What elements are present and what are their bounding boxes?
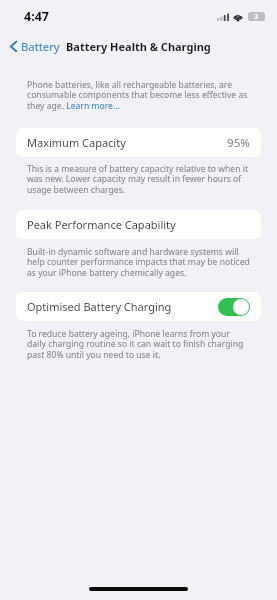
- staticText: 3: [254, 12, 259, 21]
- button[interactable]: Maximum Capacity: [16, 128, 261, 157]
- staticText: 4:47: [24, 8, 49, 25]
- staticText: Maximum Capacity: [27, 135, 126, 150]
- button[interactable]: Peak Performance Capability: [16, 210, 261, 239]
- staticText: Battery Health & Charging: [66, 39, 211, 54]
- button[interactable]: Optimised Battery Charging toggle: [218, 298, 250, 316]
- staticText: Built-in dynamic software and hardware s…: [27, 246, 250, 279]
- staticText: This is a measure of battery capacity re…: [27, 163, 249, 196]
- staticText: 95%: [227, 135, 250, 151]
- staticText: Phone batteries, like all rechargeable b…: [27, 79, 248, 112]
- staticText: Optimised Battery Charging: [27, 299, 172, 314]
- staticText: Battery: [21, 39, 60, 54]
- button[interactable]: Optimised Battery Charging: [16, 292, 261, 321]
- button[interactable]: Back to Battery: [9, 39, 60, 54]
- staticText: To reduce battery ageing, iPhone learns …: [27, 328, 244, 361]
- staticText: Peak Performance Capability: [27, 217, 176, 232]
